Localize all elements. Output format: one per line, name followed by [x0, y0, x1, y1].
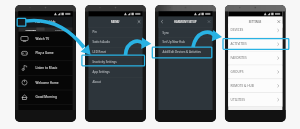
- button[interactable]: [0, 0, 300, 129]
